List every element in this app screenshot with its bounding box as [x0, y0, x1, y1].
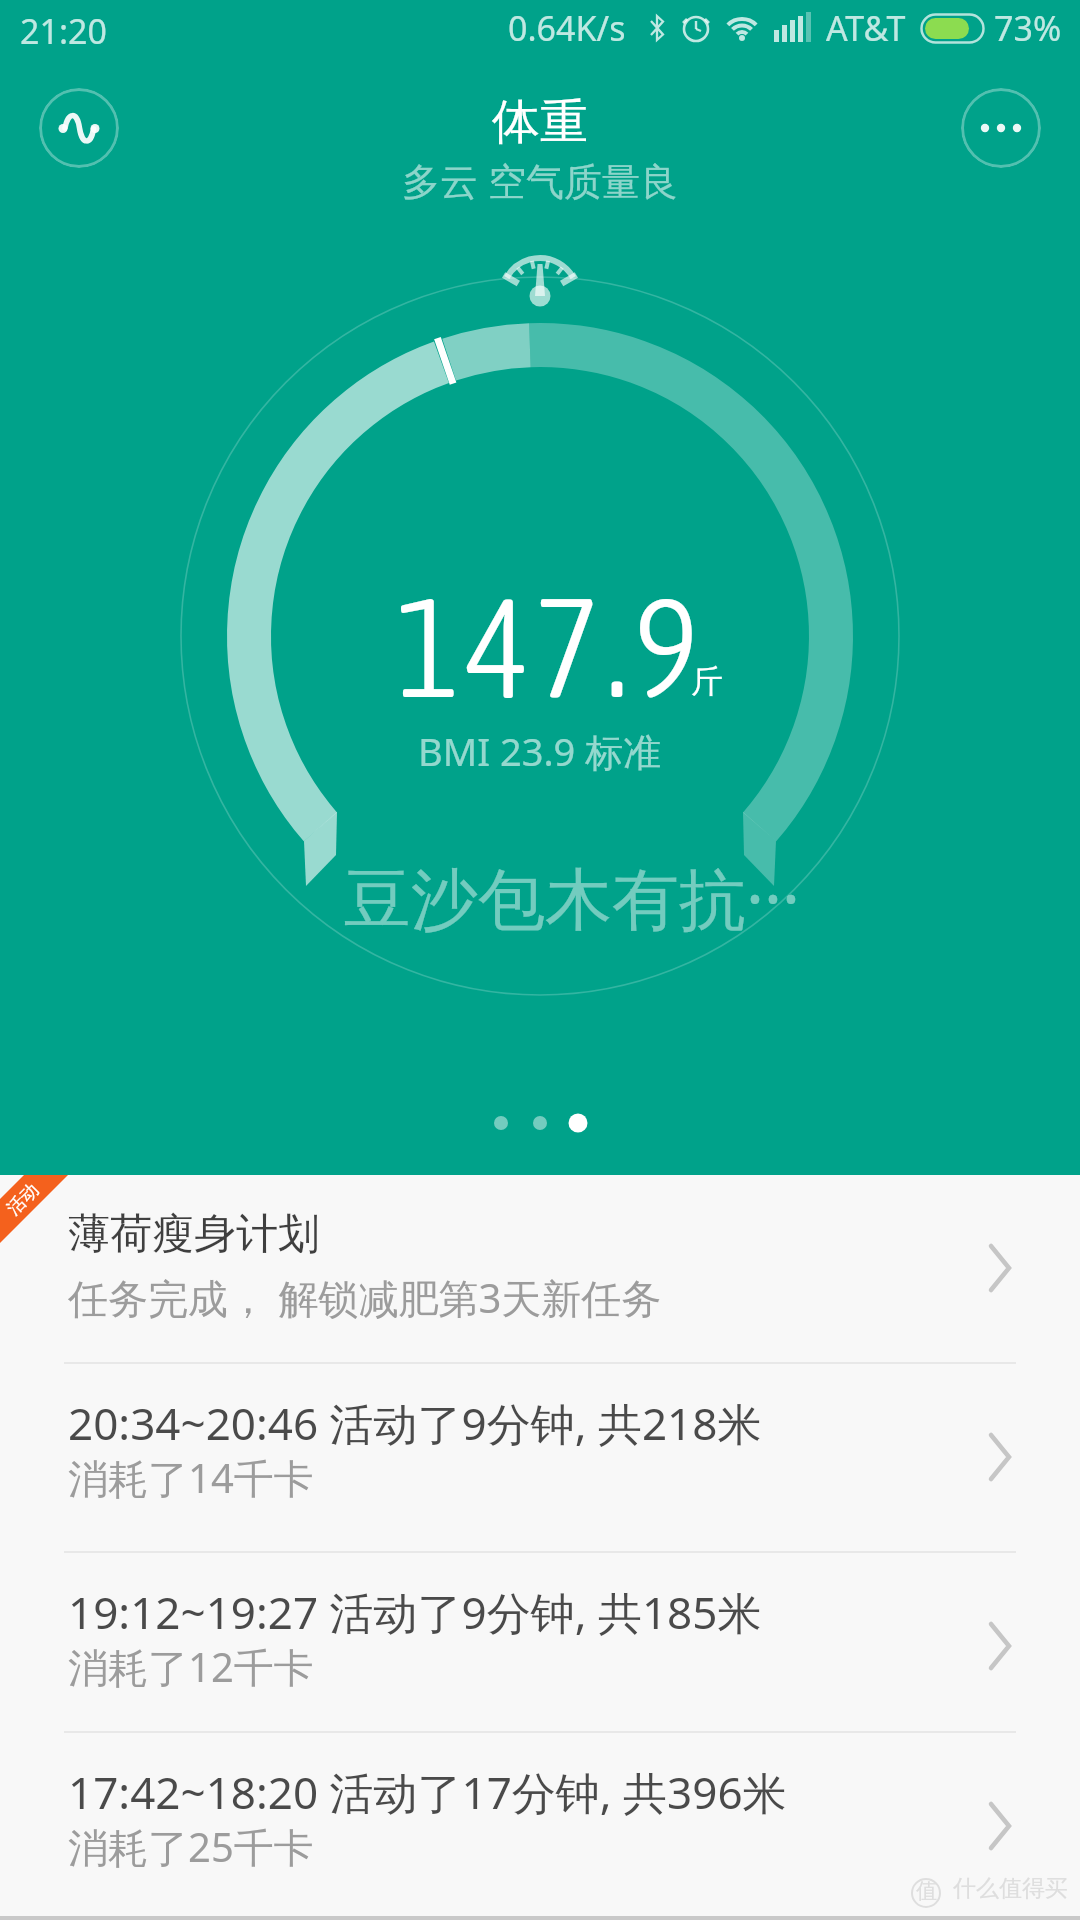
- staticText: 体重: [492, 92, 588, 152]
- staticText: 值: [916, 1878, 937, 1904]
- staticText: 73%: [994, 5, 1062, 51]
- button[interactable]: 17:42~18:20 活动了17分钟, 共396米: [0, 1733, 1080, 1920]
- staticText: 消耗了25千卡: [68, 1819, 314, 1874]
- button[interactable]: 20:34~20:46 活动了9分钟, 共218米: [0, 1364, 1080, 1551]
- staticText: 任务完成， 解锁减肥第3天新任务: [68, 1270, 662, 1325]
- staticText: 薄荷瘦身计划: [68, 1208, 320, 1261]
- staticText: 19:12~19:27 活动了9分钟, 共185米: [68, 1582, 762, 1642]
- button[interactable]: 薄荷瘦身计划: [0, 1175, 1080, 1362]
- staticText: 什么值得买: [953, 1874, 1068, 1903]
- staticText: AT&T: [826, 5, 906, 51]
- button[interactable]: [961, 88, 1041, 168]
- staticText: 21:20: [20, 8, 107, 54]
- button[interactable]: 19:12~19:27 活动了9分钟, 共185米: [0, 1553, 1080, 1731]
- staticText: 20:34~20:46 活动了9分钟, 共218米: [68, 1393, 762, 1453]
- staticText: 多云 空气质量良: [402, 154, 678, 206]
- button[interactable]: [39, 88, 119, 168]
- staticText: 消耗了12千卡: [68, 1639, 314, 1694]
- staticText: 消耗了14千卡: [68, 1450, 314, 1505]
- staticText: 0.64K/s: [508, 5, 626, 51]
- staticText: BMI 23.9 标准: [418, 725, 662, 777]
- staticText: 147.9: [395, 566, 704, 726]
- staticText: 斤: [691, 661, 723, 701]
- staticText: 活动: [2, 1179, 44, 1220]
- staticText: 豆沙包木有抗···: [344, 851, 800, 943]
- staticText: 17:42~18:20 活动了17分钟, 共396米: [68, 1762, 787, 1822]
